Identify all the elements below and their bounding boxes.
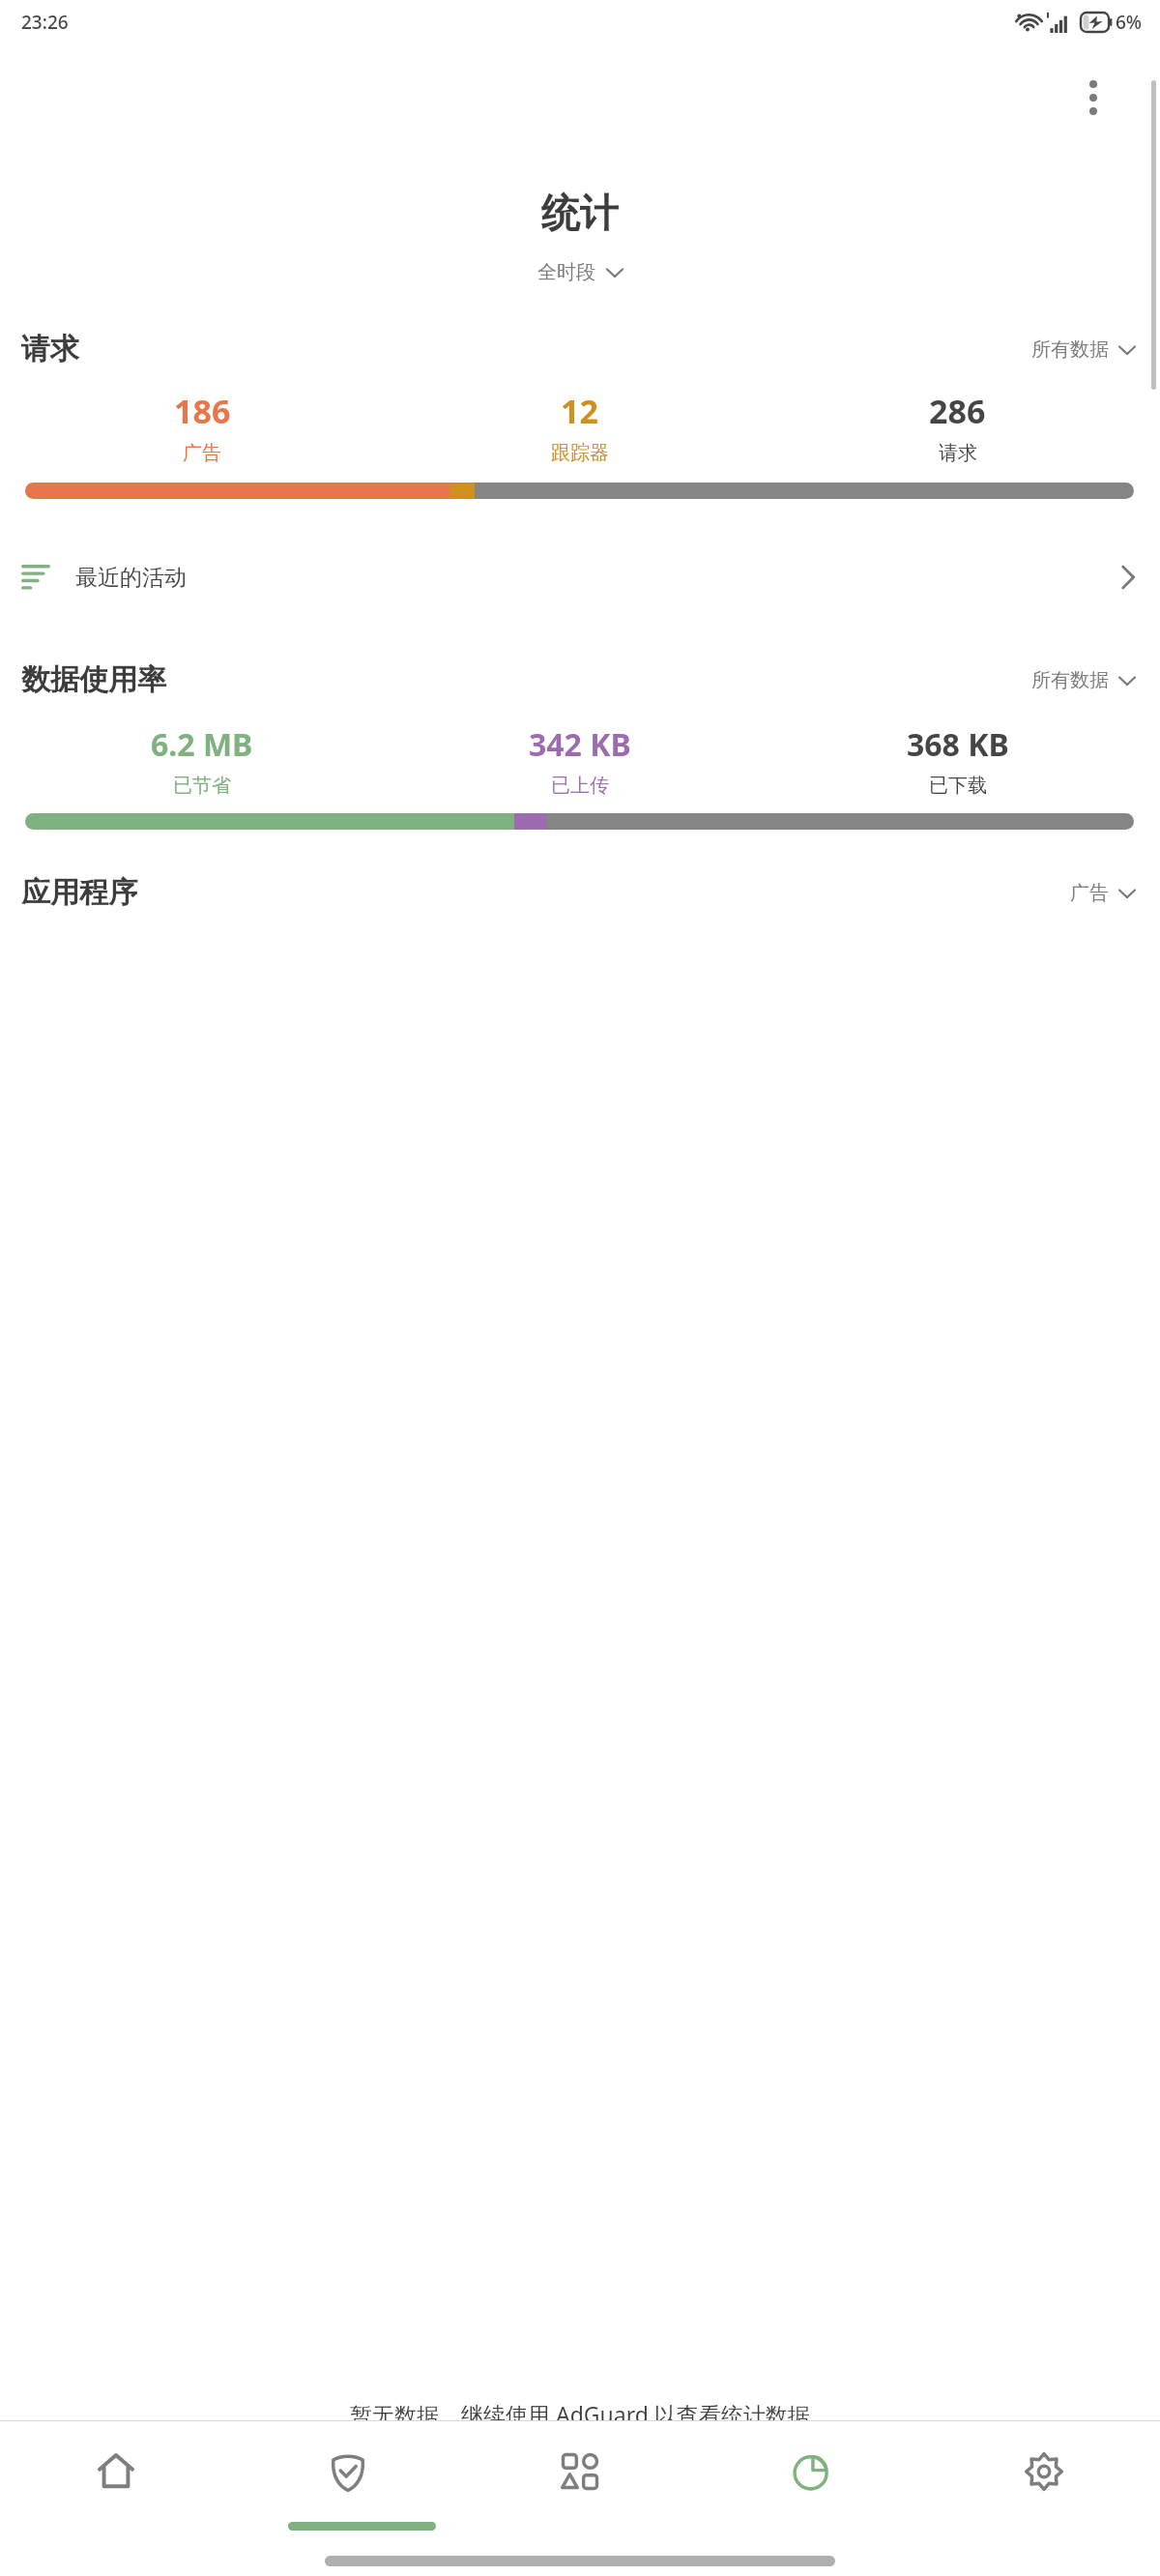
button[interactable]: 广告 bbox=[1070, 881, 1135, 905]
staticText: 所有数据 bbox=[1031, 337, 1109, 362]
staticText: 统计 bbox=[0, 189, 1160, 237]
button[interactable]: 286 bbox=[768, 389, 1146, 465]
staticText: 368 KB bbox=[907, 723, 1009, 766]
button[interactable]: 6.2 MB bbox=[14, 723, 391, 798]
button[interactable]: 最近的活动 bbox=[0, 540, 1160, 615]
button[interactable]: Settings bbox=[928, 2421, 1160, 2522]
staticText: 286 bbox=[929, 389, 986, 433]
staticText: 23:26 bbox=[21, 10, 69, 35]
staticText: 342 KB bbox=[529, 723, 631, 766]
staticText: 最近的活动 bbox=[75, 564, 187, 592]
staticText: 暂无数据。继续使用 AdGuard 以查看统计数据 bbox=[350, 2399, 810, 2420]
staticText: 请求 bbox=[21, 331, 79, 367]
staticText: 所有数据 bbox=[1031, 668, 1109, 692]
staticText: 已上传 bbox=[551, 774, 609, 798]
staticText: 6% bbox=[1116, 10, 1143, 35]
button[interactable]: More options bbox=[1067, 72, 1119, 124]
button[interactable]: 186 bbox=[14, 389, 391, 465]
button[interactable]: Apps bbox=[464, 2421, 696, 2522]
button[interactable]: 342 KB bbox=[391, 723, 768, 798]
staticText: 已节省 bbox=[173, 774, 231, 798]
staticText: 全时段 bbox=[537, 260, 595, 284]
button[interactable]: Statistics bbox=[696, 2421, 928, 2522]
staticText: 跟踪器 bbox=[551, 441, 609, 465]
staticText: 数据使用率 bbox=[21, 661, 166, 698]
button[interactable]: 所有数据 bbox=[1031, 337, 1135, 362]
staticText: 应用程序 bbox=[21, 874, 137, 911]
staticText: 广告 bbox=[183, 441, 221, 465]
button[interactable]: Home bbox=[0, 2421, 232, 2522]
button[interactable]: Protection bbox=[232, 2421, 464, 2522]
staticText: 已下载 bbox=[929, 774, 987, 798]
staticText: 请求 bbox=[939, 441, 977, 465]
staticText: 186 bbox=[174, 389, 231, 433]
staticText: 12 bbox=[561, 389, 598, 433]
button[interactable]: 12 bbox=[391, 389, 768, 465]
button[interactable]: 所有数据 bbox=[1031, 668, 1135, 692]
staticText: 广告 bbox=[1070, 881, 1109, 905]
staticText: 6.2 MB bbox=[151, 723, 253, 766]
button[interactable]: 全时段 bbox=[0, 260, 1160, 284]
button[interactable]: 368 KB bbox=[768, 723, 1146, 798]
